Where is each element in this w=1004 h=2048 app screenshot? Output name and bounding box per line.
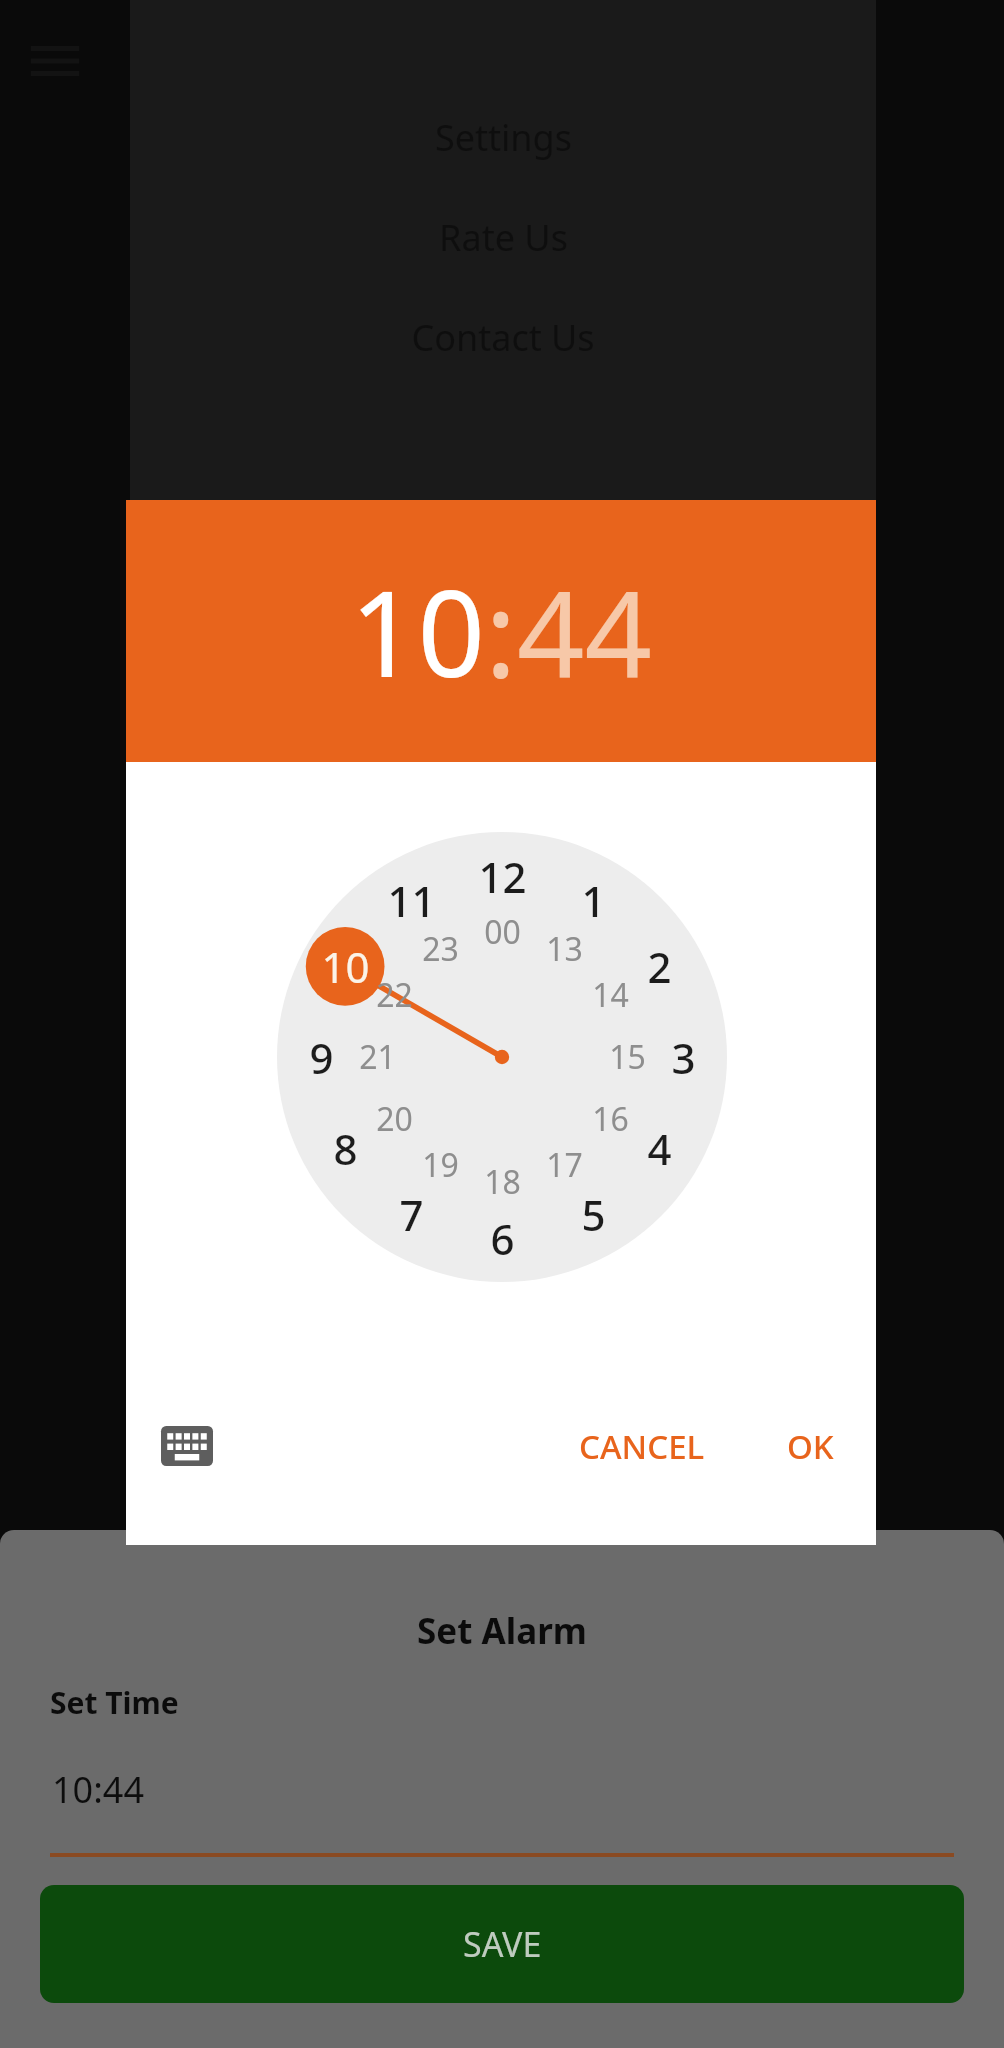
staticText: SAVE — [463, 1921, 542, 1967]
button[interactable]: 00 — [467, 897, 537, 967]
staticText: Rate Us — [439, 213, 568, 262]
button[interactable]: SAVE — [40, 1885, 964, 2003]
button[interactable]: 15 — [592, 1022, 662, 1092]
button[interactable]: 7 — [376, 1179, 446, 1249]
button[interactable]: 44 — [517, 551, 652, 712]
button[interactable]: 18 — [467, 1147, 537, 1217]
button[interactable]: 13 — [529, 914, 599, 984]
staticText: : — [485, 551, 517, 712]
staticText: 10 — [321, 938, 370, 995]
staticText: OK — [787, 1424, 834, 1469]
button[interactable]: 5 — [558, 1179, 628, 1249]
staticText: 00 — [484, 910, 521, 954]
staticText: 20 — [376, 1097, 413, 1141]
button[interactable]: 11 — [376, 865, 446, 935]
staticText: 9 — [309, 1029, 334, 1086]
button[interactable]: 16 — [575, 1084, 645, 1154]
button[interactable]: 2 — [624, 931, 694, 1001]
button[interactable]: 19 — [405, 1130, 475, 1200]
staticText: 12 — [478, 848, 527, 905]
button[interactable]: 21 — [342, 1022, 412, 1092]
button[interactable]: 1 — [558, 865, 628, 935]
button[interactable]: 9 — [286, 1022, 356, 1092]
staticText: 3 — [671, 1029, 696, 1086]
button[interactable]: Menu — [24, 30, 86, 92]
button[interactable]: 4 — [624, 1113, 694, 1183]
button[interactable]: 20 — [359, 1084, 429, 1154]
staticText: Contact Us — [411, 313, 595, 362]
staticText: CANCEL — [579, 1424, 705, 1469]
staticText: 18 — [484, 1160, 521, 1204]
staticText: 5 — [581, 1186, 606, 1243]
staticText: 19 — [422, 1143, 459, 1187]
staticText: 16 — [592, 1097, 629, 1141]
staticText: 4 — [647, 1120, 672, 1177]
staticText: Set Alarm — [0, 1607, 1004, 1655]
staticText: 11 — [387, 872, 436, 929]
button[interactable]: OK — [771, 1412, 850, 1481]
staticText: 7 — [399, 1186, 424, 1243]
staticText: 10 — [350, 551, 485, 712]
button[interactable]: 3 — [648, 1022, 718, 1092]
staticText: 2 — [647, 938, 672, 995]
staticText: 14 — [592, 973, 629, 1017]
staticText: 13 — [546, 927, 583, 971]
staticText: 10:44 — [52, 1765, 145, 1814]
button[interactable]: 10 — [350, 551, 485, 712]
button[interactable]: 10 — [310, 931, 380, 1001]
button[interactable]: CANCEL — [563, 1412, 721, 1481]
button[interactable]: 22 — [359, 960, 429, 1030]
button[interactable]: 23 — [405, 914, 475, 984]
staticText: 8 — [333, 1120, 358, 1177]
button[interactable]: Switch to keyboard input — [154, 1413, 220, 1479]
button[interactable]: 6 — [467, 1203, 537, 1273]
staticText: 6 — [490, 1210, 515, 1267]
button[interactable]: 17 — [529, 1130, 599, 1200]
button[interactable]: 12 — [467, 841, 537, 911]
button[interactable]: 8 — [310, 1113, 380, 1183]
staticText: 23 — [422, 927, 459, 971]
staticText: 44 — [517, 551, 652, 712]
staticText: 21 — [359, 1035, 396, 1079]
staticText: 17 — [546, 1143, 583, 1187]
staticText: 1 — [581, 872, 606, 929]
button[interactable]: 14 — [575, 960, 645, 1030]
staticText: 15 — [609, 1035, 646, 1079]
staticText: 22 — [376, 973, 413, 1017]
staticText: Settings — [435, 113, 572, 162]
staticText: Set Time — [50, 1682, 179, 1723]
